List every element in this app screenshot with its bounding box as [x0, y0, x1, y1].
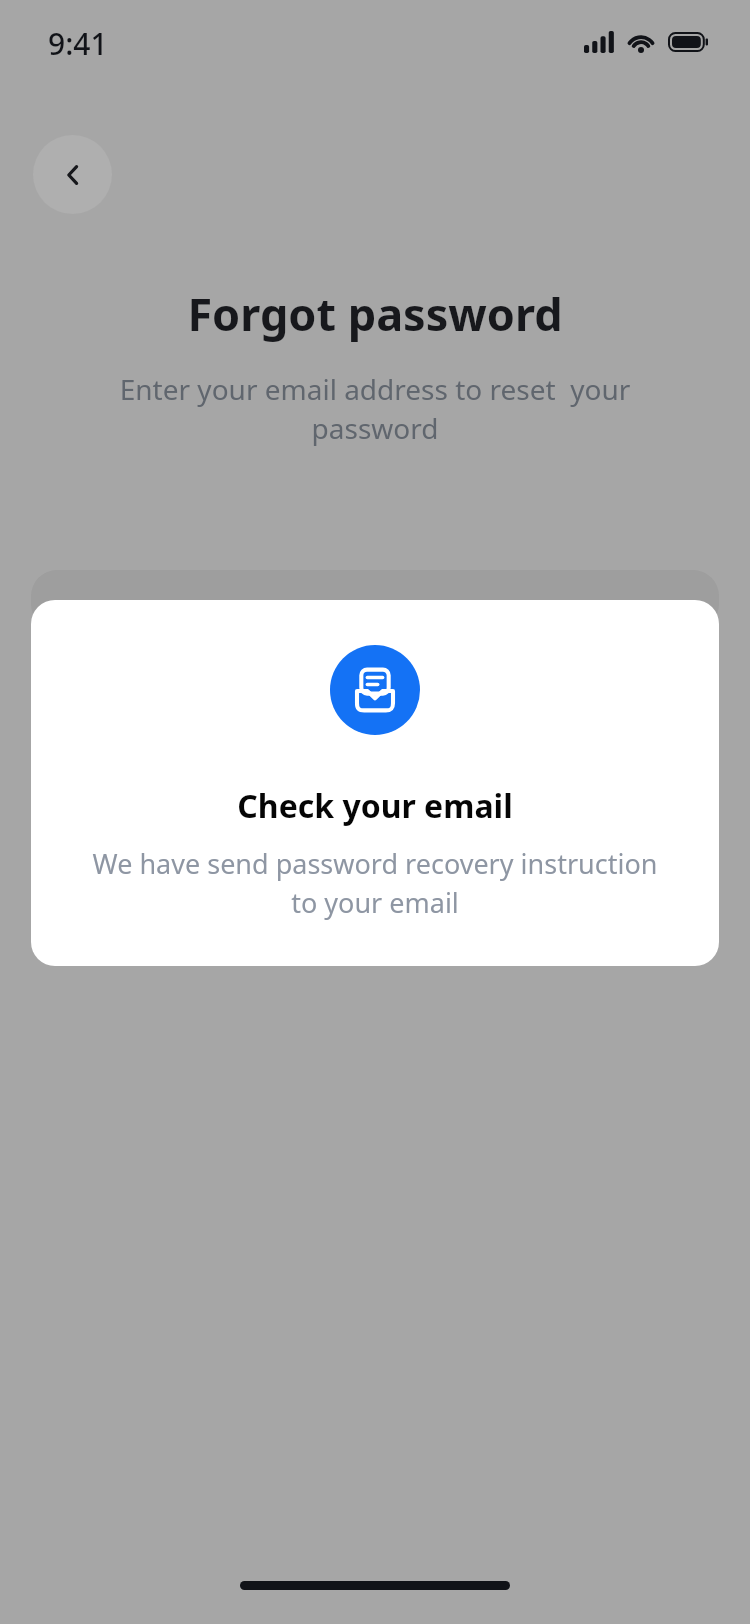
staticText: We have send password recovery instructi…: [89, 845, 661, 921]
button[interactable]: Check your email: [31, 600, 719, 966]
staticText: 9:41: [48, 23, 108, 64]
staticText: Enter your email address to reset your p…: [76, 370, 674, 447]
staticText: Forgot password: [187, 283, 563, 344]
button[interactable]: Back: [33, 135, 112, 214]
staticText: Check your email: [237, 784, 513, 828]
